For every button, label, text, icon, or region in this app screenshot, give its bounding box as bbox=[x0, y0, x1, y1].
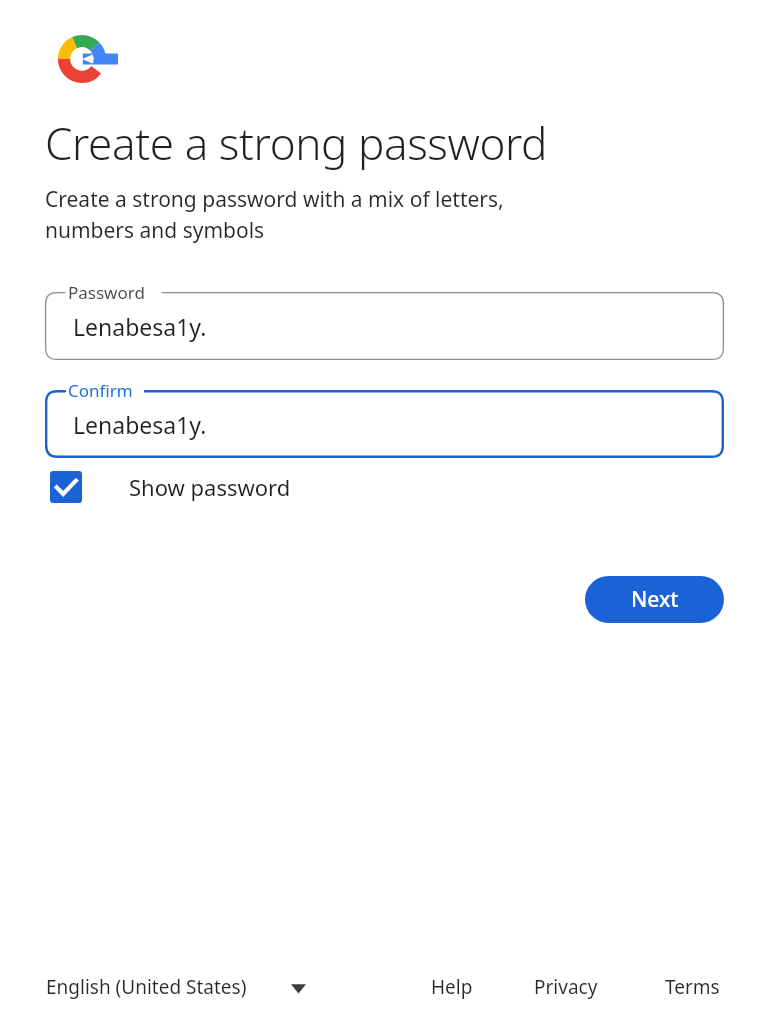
staticText: Privacy bbox=[534, 974, 598, 1000]
other: Change language bbox=[291, 980, 306, 995]
staticText: Next bbox=[631, 585, 679, 614]
staticText: English (United States) bbox=[46, 974, 247, 1000]
staticText: Create a strong password with a mix of l… bbox=[45, 185, 504, 244]
button[interactable]: Confirm bbox=[45, 390, 724, 458]
staticText: Lenabesa1y. bbox=[73, 409, 207, 440]
button[interactable]: English (United States) bbox=[38, 966, 314, 1008]
staticText: Confirm bbox=[68, 379, 133, 402]
staticText: Help bbox=[431, 974, 473, 1000]
button[interactable]: Terms bbox=[657, 966, 728, 1008]
staticText: Terms bbox=[665, 974, 720, 1000]
staticText: Password bbox=[68, 281, 145, 304]
button[interactable]: Next bbox=[585, 576, 724, 623]
button[interactable]: Password bbox=[45, 292, 724, 360]
button[interactable]: Show password bbox=[45, 466, 296, 508]
staticText: Show password bbox=[129, 472, 291, 502]
button[interactable]: Help bbox=[423, 966, 481, 1008]
button[interactable]: Privacy bbox=[526, 966, 606, 1008]
staticText: Lenabesa1y. bbox=[73, 311, 207, 342]
staticText: Create a strong password bbox=[45, 113, 548, 173]
